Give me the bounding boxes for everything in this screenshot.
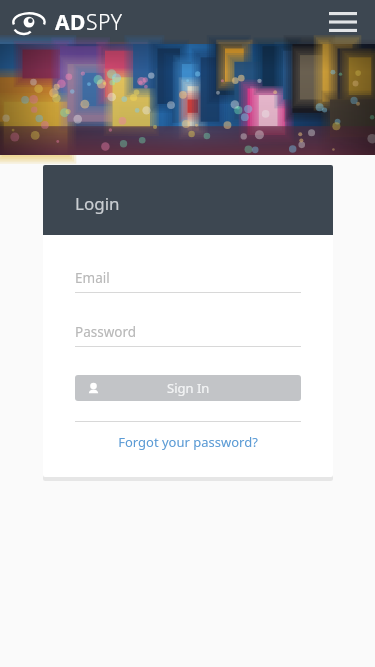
button[interactable]: Forgot your password? — [75, 433, 301, 451]
staticText: SPY — [86, 8, 123, 37]
button[interactable]: Email — [75, 269, 301, 293]
staticText: Forgot your password? — [118, 433, 258, 451]
button[interactable]: Sign In — [75, 375, 301, 401]
staticText: Login — [75, 192, 120, 215]
staticText: Password — [75, 323, 137, 341]
staticText: Sign In — [167, 379, 210, 397]
button[interactable]: Menu — [327, 9, 359, 35]
button[interactable]: AD — [12, 8, 123, 37]
staticText: Email — [75, 269, 110, 287]
staticText: AD — [55, 8, 86, 37]
button[interactable]: Password — [75, 323, 301, 347]
